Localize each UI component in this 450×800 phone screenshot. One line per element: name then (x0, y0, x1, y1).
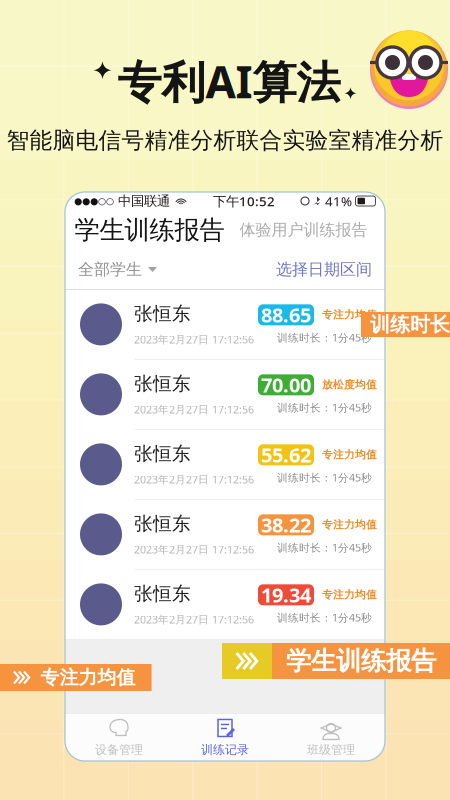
staticText: 88.65 (261, 301, 311, 328)
staticText: 专注力均值 (322, 448, 377, 461)
staticText: 70.00 (261, 371, 311, 398)
staticText: 张恒东 (134, 512, 191, 535)
staticText: 专利AI算法 (117, 52, 340, 110)
staticText: 38.22 (261, 511, 311, 538)
staticText: 专注力均值 (322, 308, 377, 321)
staticText: 学生训练报告 (286, 645, 436, 676)
staticText: 2023年2月27日 17:12:56 (134, 402, 254, 416)
button[interactable]: 全部学生 (78, 254, 157, 285)
staticText: 训练时长 (370, 312, 450, 337)
staticText: 专注力均值 (322, 588, 377, 601)
staticText: 2023年2月27日 17:12:56 (134, 472, 254, 486)
button[interactable]: 班级管理 (278, 714, 384, 761)
staticText: 智能脑电信号精准分析联合实验室精准分析 (6, 126, 443, 154)
staticText: 下午10:52 (213, 192, 275, 210)
staticText: 张恒东 (134, 442, 191, 465)
staticText: 班级管理 (307, 742, 355, 757)
staticText: 选择日期区间 (276, 260, 372, 279)
staticText: 全部学生 (78, 260, 142, 279)
staticText: 张恒东 (134, 302, 191, 325)
staticText: 设备管理 (95, 742, 143, 757)
staticText: 张恒东 (134, 582, 191, 605)
staticText: 中国联通 (118, 193, 170, 209)
staticText: 专注力均值 (41, 666, 136, 689)
button[interactable]: 训练记录 (172, 714, 278, 761)
staticText: 放松度均值 (322, 378, 377, 391)
staticText: 学生训练报告 (74, 214, 224, 245)
staticText: 训练时长：1分45秒 (277, 330, 372, 344)
staticText: 训练时长：1分45秒 (277, 610, 372, 624)
staticText: 训练时长：1分45秒 (277, 470, 372, 484)
button[interactable]: 张恒东 (65, 570, 385, 639)
button[interactable]: 张恒东 (65, 430, 385, 499)
staticText: 训练时长：1分45秒 (277, 540, 372, 554)
staticText: 专注力均值 (322, 518, 377, 531)
staticText: 训练时长：1分45秒 (277, 400, 372, 414)
staticText: 2023年2月27日 17:12:56 (134, 332, 254, 346)
staticText: 训练记录 (201, 742, 249, 757)
staticText: ●●●○○ (74, 196, 114, 206)
button[interactable]: 张恒东 (65, 360, 385, 429)
button[interactable]: 张恒东 (65, 290, 385, 359)
staticText: 19.34 (261, 581, 311, 608)
staticText: 41% (325, 192, 352, 210)
staticText: 2023年2月27日 17:12:56 (134, 542, 254, 556)
staticText: 2023年2月27日 17:12:56 (134, 612, 254, 626)
button[interactable]: 设备管理 (66, 714, 172, 761)
button[interactable]: 选择日期区间 (276, 254, 372, 285)
button[interactable]: 张恒东 (65, 500, 385, 569)
staticText: 55.62 (261, 441, 311, 468)
staticText: 体验用户训练报告 (239, 220, 367, 240)
staticText: 张恒东 (134, 372, 191, 395)
